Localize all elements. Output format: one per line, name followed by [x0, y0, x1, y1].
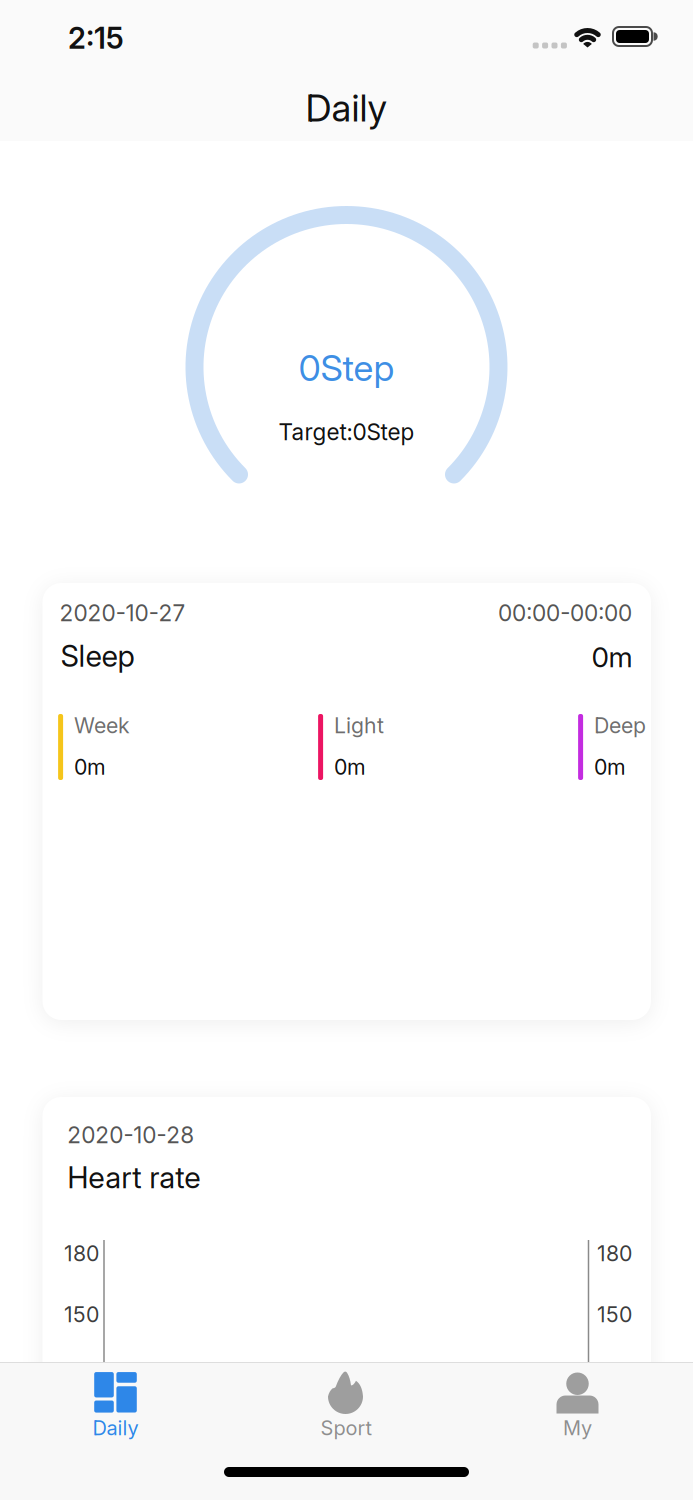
staticText: 0m — [594, 754, 626, 780]
staticText: Week — [74, 713, 130, 738]
staticText: Deep — [594, 713, 646, 738]
button[interactable]: My — [487, 1362, 667, 1438]
button[interactable]: Sport — [256, 1362, 436, 1438]
staticText: Daily — [92, 1416, 138, 1440]
staticText: Sport — [320, 1416, 372, 1440]
staticText: 150 — [64, 1302, 99, 1327]
staticText: 0m — [591, 640, 632, 673]
staticText: 150 — [597, 1302, 632, 1327]
staticText: 0Step — [298, 347, 394, 389]
staticText: Heart rate — [67, 1160, 200, 1195]
staticText: 180 — [597, 1241, 632, 1266]
staticText: 2:15 — [68, 21, 124, 55]
staticText: 2020-10-28 — [67, 1122, 194, 1148]
staticText: 0m — [334, 754, 366, 780]
staticText: 2020-10-27 — [59, 600, 185, 626]
staticText: Sleep — [60, 639, 134, 673]
staticText: 00:00-00:00 — [498, 600, 632, 626]
staticText: 0m — [74, 754, 106, 780]
staticText: My — [563, 1416, 592, 1440]
staticText: Light — [334, 713, 384, 738]
staticText: 180 — [64, 1241, 99, 1266]
staticText: Target:0Step — [278, 419, 414, 445]
staticText: Daily — [305, 86, 387, 130]
button[interactable]: Daily — [25, 1362, 205, 1438]
